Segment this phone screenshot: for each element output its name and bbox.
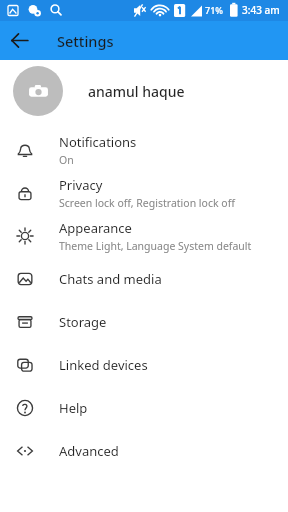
staticText: Theme Light, Language System default	[59, 239, 252, 253]
staticText: anamul haque	[88, 82, 185, 101]
staticText: Privacy	[59, 176, 103, 194]
button[interactable]: Advanced	[0, 429, 288, 472]
button[interactable]: Linked devices	[0, 343, 288, 386]
staticText: Help	[59, 399, 88, 417]
button[interactable]: Chats and media	[0, 257, 288, 300]
staticText: On	[59, 153, 74, 167]
staticText: 71%	[205, 4, 223, 16]
button[interactable]: Notifications	[0, 128, 288, 171]
button[interactable]: Help	[0, 386, 288, 429]
button[interactable]: Appearance	[0, 214, 288, 257]
staticText: Appearance	[59, 219, 132, 237]
staticText: Linked devices	[59, 356, 148, 374]
staticText: Notifications	[59, 133, 137, 151]
staticText: 3:43 am	[242, 3, 280, 17]
staticText: Storage	[59, 313, 107, 331]
staticText: Chats and media	[59, 270, 162, 288]
button[interactable]: Back	[1, 22, 38, 59]
staticText: Screen lock off, Registration lock off	[59, 196, 235, 210]
staticText: Advanced	[59, 442, 119, 460]
button[interactable]: Storage	[0, 300, 288, 343]
button[interactable]: anamul haque	[0, 65, 288, 117]
staticText: Settings	[57, 31, 114, 51]
button[interactable]: Privacy	[0, 171, 288, 214]
